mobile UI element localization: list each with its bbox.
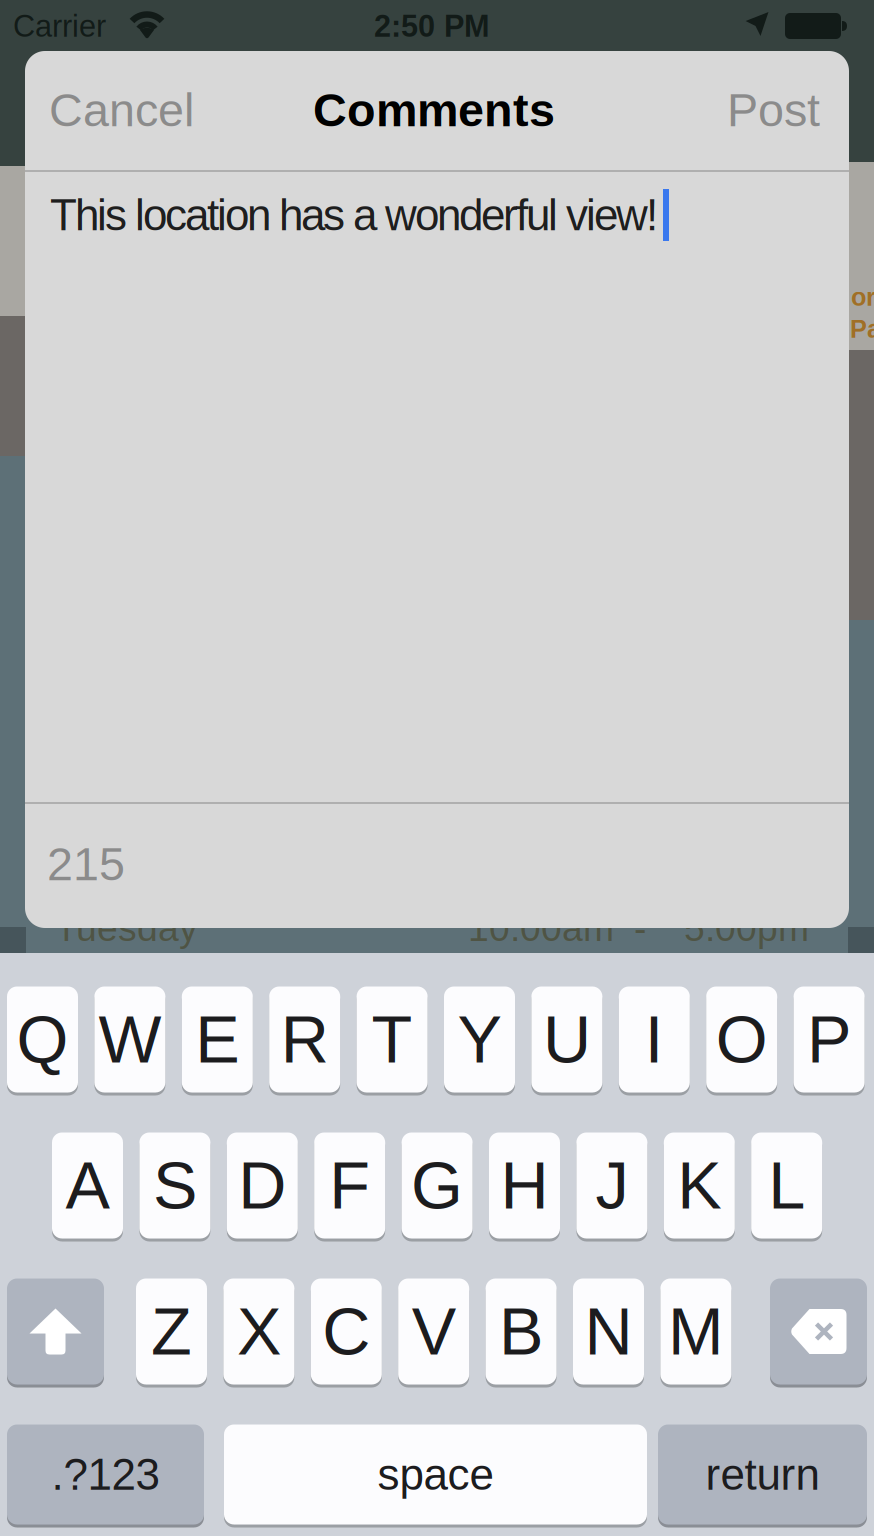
staticText: Pa <box>850 315 874 343</box>
staticText: 5:00pm <box>684 907 809 949</box>
staticText: I <box>645 1002 664 1077</box>
staticText: Tuesday <box>55 907 198 949</box>
button[interactable]: B <box>486 1277 557 1386</box>
button[interactable]: return <box>658 1423 867 1526</box>
button[interactable]: W <box>94 985 165 1094</box>
button[interactable]: J <box>576 1131 647 1240</box>
staticText: G <box>411 1148 463 1223</box>
button[interactable]: space <box>224 1423 647 1526</box>
staticText: return <box>705 1450 819 1499</box>
staticText: 215 <box>47 838 125 890</box>
staticText: S <box>153 1148 197 1223</box>
staticText: F <box>329 1148 370 1223</box>
button[interactable]: V <box>398 1277 469 1386</box>
button[interactable]: F <box>314 1131 385 1240</box>
button[interactable]: O <box>706 985 777 1094</box>
button[interactable]: D <box>227 1131 298 1240</box>
staticText: orn <box>851 283 874 311</box>
staticText: Carrier <box>13 9 106 43</box>
staticText: H <box>500 1148 548 1223</box>
staticText: M <box>668 1294 724 1369</box>
staticText: 10:00am - <box>468 907 646 949</box>
staticText: .?123 <box>51 1450 159 1499</box>
button[interactable]: Shift <box>7 1277 104 1386</box>
button[interactable]: Y <box>444 985 515 1094</box>
staticText: Cancel <box>49 84 194 136</box>
staticText: V <box>412 1294 456 1369</box>
button[interactable]: M <box>660 1277 731 1386</box>
staticText: C <box>322 1294 370 1369</box>
button[interactable]: E <box>182 985 253 1094</box>
staticText: space <box>377 1450 493 1499</box>
button[interactable]: C <box>311 1277 382 1386</box>
staticText: B <box>499 1294 543 1369</box>
button[interactable]: L <box>751 1131 822 1240</box>
button[interactable]: .?123 <box>7 1423 204 1526</box>
button[interactable]: S <box>139 1131 210 1240</box>
staticText: D <box>238 1148 286 1223</box>
button[interactable]: Q <box>7 985 78 1094</box>
button[interactable]: Cancel <box>0 0 874 1536</box>
button[interactable]: N <box>573 1277 644 1386</box>
staticText: U <box>543 1002 591 1077</box>
button[interactable]: X <box>223 1277 294 1386</box>
button[interactable]: P <box>794 985 865 1094</box>
staticText: P <box>807 1002 851 1077</box>
staticText: A <box>65 1148 109 1223</box>
button[interactable]: Delete <box>770 1277 867 1386</box>
staticText: X <box>237 1294 281 1369</box>
button[interactable]: Post <box>0 0 874 1536</box>
staticText: Q <box>16 1002 68 1077</box>
button[interactable]: H <box>489 1131 560 1240</box>
staticText: Y <box>457 1002 501 1077</box>
button[interactable]: U <box>531 985 602 1094</box>
staticText: L <box>768 1148 805 1223</box>
button[interactable]: R <box>269 985 340 1094</box>
button[interactable]: K <box>664 1131 735 1240</box>
staticText: O <box>716 1002 768 1077</box>
staticText: T <box>372 1002 413 1077</box>
staticText: This location has a wonderful view! <box>50 190 658 240</box>
button[interactable]: A <box>52 1131 123 1240</box>
staticText: Comments <box>313 84 555 136</box>
staticText: E <box>195 1002 239 1077</box>
button[interactable]: I <box>619 985 690 1094</box>
button[interactable]: T <box>357 985 428 1094</box>
staticText: W <box>98 1002 161 1077</box>
button[interactable]: Z <box>136 1277 207 1386</box>
staticText: N <box>584 1294 632 1369</box>
staticText: R <box>281 1002 329 1077</box>
staticText: 2:50 PM <box>374 9 490 43</box>
staticText: Z <box>151 1294 192 1369</box>
staticText: J <box>595 1148 628 1223</box>
staticText: K <box>677 1148 721 1223</box>
staticText: Post <box>727 84 820 136</box>
button[interactable]: G <box>402 1131 473 1240</box>
